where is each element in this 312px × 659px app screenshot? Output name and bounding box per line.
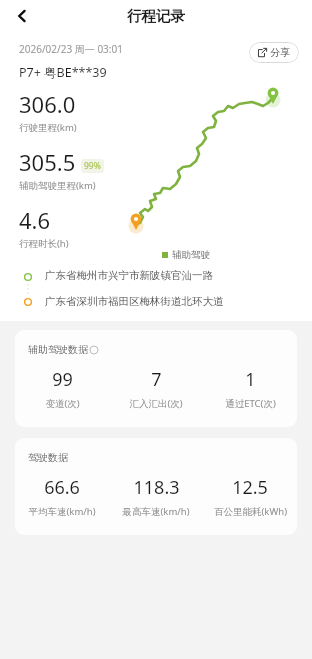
staticText: 变道(次) [45,397,80,410]
staticText: 汇入汇出(次) [129,397,183,410]
staticText: 99 [52,367,73,392]
staticText: 行程时长(h) [19,237,69,250]
staticText: 广东省梅州市兴宁市新陂镇官汕一路 [45,269,213,282]
staticText: 7 [151,367,162,392]
staticText: 辅助驾驶数据 [28,343,88,356]
staticText: 平均车速(km/h) [28,505,96,518]
staticText: 分享 [270,46,290,59]
button[interactable]: 分享 [249,42,299,63]
staticText: 驾驶数据 [28,451,68,464]
button[interactable]: Back [6,0,38,32]
staticText: 4.6 [19,205,51,235]
staticText: 通过ETC(次) [225,397,276,410]
staticText: 辅助驾驶 [172,249,210,261]
staticText: 99% [84,160,101,172]
staticText: 118.3 [133,475,180,500]
staticText: 广东省深圳市福田区梅林街道北环大道 [45,295,224,308]
staticText: 百公里能耗(kWh) [214,505,287,518]
staticText: 最高车速(km/h) [122,505,190,518]
staticText: 行程记录 [127,7,185,25]
staticText: 1 [245,367,256,392]
staticText: P7+ 粤BE***39 [19,64,107,81]
staticText: 辅助驾驶里程(km) [19,179,96,192]
staticText: 行驶里程(km) [19,121,77,134]
staticText: 2026/02/23 周一 03:01 [19,42,123,56]
staticText: 66.6 [44,475,80,500]
staticText: 12.5 [232,475,268,500]
staticText: 306.0 [19,89,76,119]
staticText: 305.5 [19,147,76,177]
